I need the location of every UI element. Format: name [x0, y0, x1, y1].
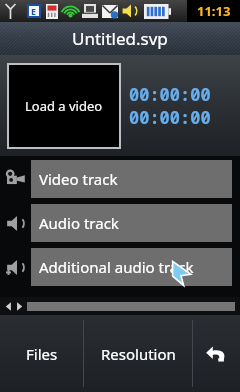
staticText: Files — [26, 344, 58, 364]
button[interactable]: Scroll right — [14, 301, 25, 312]
staticText: Untitled.svp — [72, 27, 168, 50]
button[interactable]: Audio track — [0, 204, 240, 242]
staticText: 00:00:00 — [129, 106, 211, 129]
staticText: Video track — [39, 169, 118, 189]
staticText: Additional audio track — [39, 257, 194, 277]
button[interactable]: Files — [0, 315, 83, 392]
button[interactable]: Scroll left — [3, 301, 14, 312]
staticText: 11:13 — [197, 2, 231, 20]
staticText: 00:00:00 — [129, 83, 211, 106]
staticText: Resolution — [101, 344, 176, 364]
staticText: E — [31, 5, 37, 17]
staticText: Load a video — [25, 97, 103, 115]
button[interactable]: Back — [193, 315, 240, 392]
button[interactable]: Video track — [0, 160, 240, 198]
button[interactable]: Resolution — [84, 315, 192, 392]
button[interactable]: Additional audio track — [0, 248, 240, 286]
staticText: Audio track — [39, 213, 119, 233]
button[interactable]: Load a video — [9, 65, 119, 147]
